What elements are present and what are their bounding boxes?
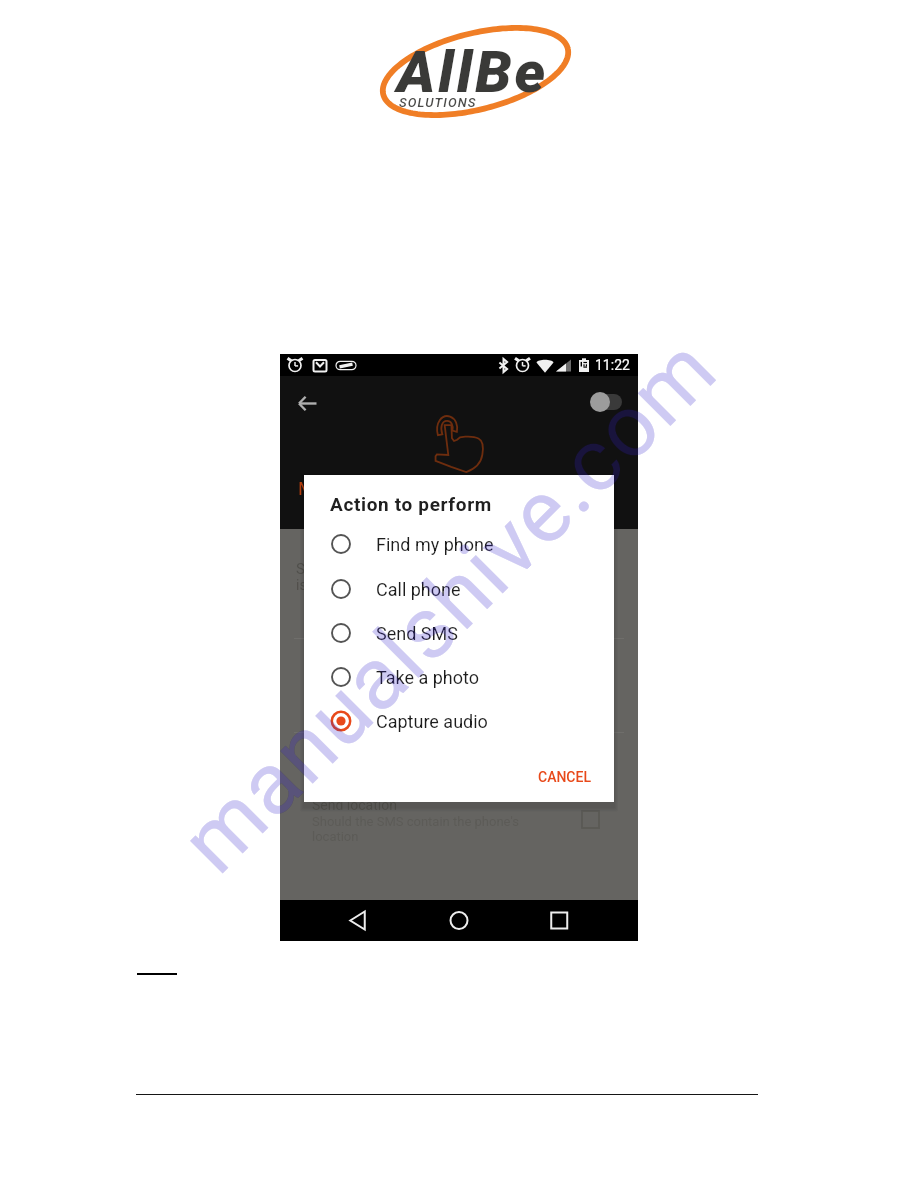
- staticText: Sensitivity: [296, 560, 365, 578]
- button[interactable]: Find my phone: [326, 527, 592, 561]
- staticText: Find my phone: [376, 534, 494, 555]
- staticText: is high: [296, 577, 337, 593]
- staticText: Send SMS: [376, 623, 458, 644]
- staticText: Call phone: [376, 579, 461, 600]
- staticText: Send location: [312, 797, 397, 813]
- button[interactable]: Back: [288, 384, 326, 422]
- staticText: AllBe: [397, 38, 549, 106]
- staticText: Capture audio: [376, 711, 488, 732]
- staticText: Action to perform: [330, 493, 492, 515]
- button[interactable]: Send SMS: [326, 616, 592, 650]
- button[interactable]: Capture audio: [326, 704, 592, 738]
- staticText: 11:22: [595, 357, 630, 373]
- staticText: Mode: [298, 477, 347, 499]
- button[interactable]: CANCEL: [532, 763, 596, 791]
- staticText: CANCEL: [538, 769, 591, 785]
- button[interactable]: Take a photo: [326, 660, 592, 694]
- staticText: Take a photo: [376, 667, 480, 688]
- staticText: SOLUTIONS: [399, 95, 477, 110]
- button[interactable]: Call phone: [326, 572, 592, 606]
- button[interactable]: Enable feature toggle: [590, 383, 632, 421]
